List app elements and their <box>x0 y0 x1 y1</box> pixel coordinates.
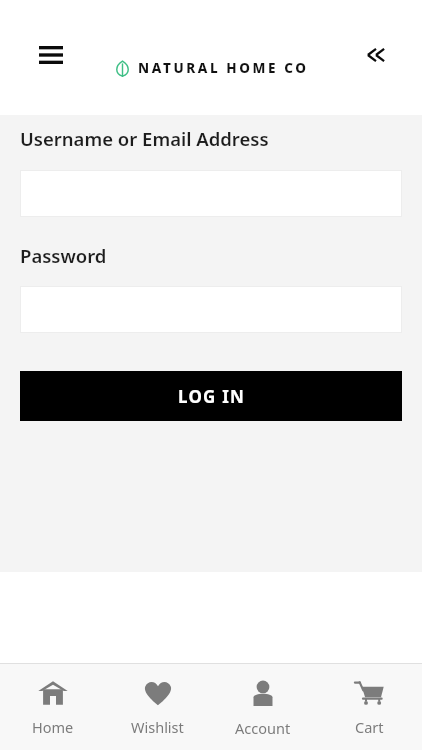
staticText: Password <box>20 243 107 268</box>
button[interactable]: Cart <box>316 663 422 750</box>
staticText: LOG IN <box>178 385 245 408</box>
staticText: Home <box>32 717 74 737</box>
staticText: Account <box>235 718 291 738</box>
staticText: Cart <box>355 717 384 737</box>
button[interactable]: Account <box>210 663 316 750</box>
button[interactable]: Menu <box>32 38 70 72</box>
staticText: NATURAL HOME CO <box>138 59 309 77</box>
button[interactable]: LOG IN <box>20 371 402 421</box>
button[interactable]: Wishlist <box>105 663 210 750</box>
staticText: Wishlist <box>131 717 184 737</box>
button[interactable]: NATURAL HOME CO <box>114 59 309 77</box>
button[interactable]: Collapse <box>358 38 394 72</box>
button[interactable]: Home <box>0 663 105 750</box>
staticText: Username or Email Address <box>20 126 269 151</box>
